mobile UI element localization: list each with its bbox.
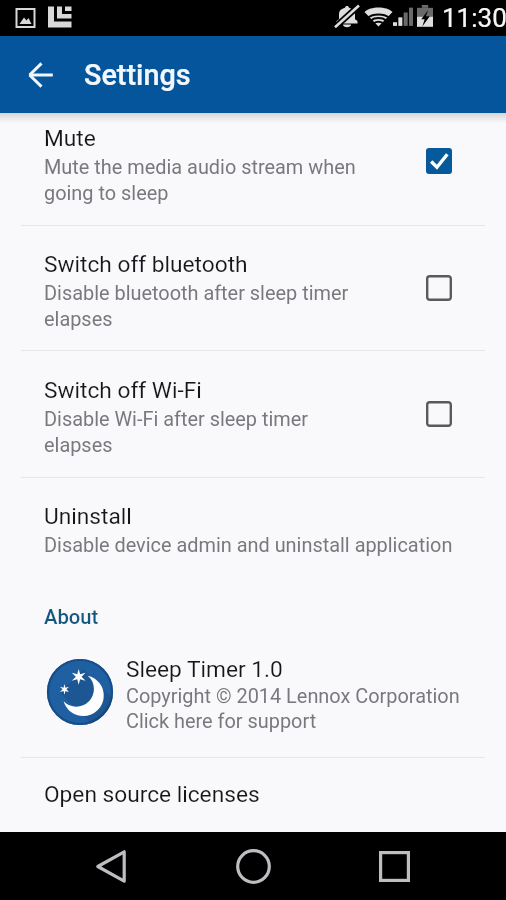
staticText: Copyright © 2014 Lennox Corporation: [126, 685, 460, 708]
button[interactable]: Home: [205, 832, 301, 900]
staticText: Switch off bluetooth: [44, 251, 248, 278]
button[interactable]: Uninstall: [0, 478, 506, 553]
staticText: Uninstall: [44, 503, 132, 530]
staticText: 11:30: [442, 3, 506, 33]
staticText: Mute the media audio stream when going t…: [44, 156, 356, 205]
button[interactable]: Navigate up: [0, 36, 78, 113]
button[interactable]: Back: [63, 832, 159, 900]
button[interactable]: Mute, checked: [414, 136, 464, 186]
staticText: Mute: [44, 125, 96, 152]
staticText: Disable device admin and uninstall appli…: [44, 534, 453, 557]
staticText: Click here for support: [126, 710, 317, 733]
button[interactable]: Switch off bluetooth, unchecked: [414, 263, 464, 313]
staticText: Open source licenses: [44, 781, 260, 808]
button[interactable]: Sleep Timer 1.0: [0, 645, 506, 745]
button[interactable]: Open source licenses: [0, 758, 506, 832]
button[interactable]: Switch off Wi-Fi: [0, 351, 506, 477]
staticText: Settings: [84, 58, 191, 92]
staticText: Disable bluetooth after sleep timer elap…: [44, 282, 349, 331]
staticText: Sleep Timer 1.0: [126, 656, 283, 683]
button[interactable]: Mute: [0, 113, 506, 225]
staticText: About: [44, 605, 99, 629]
staticText: Disable Wi-Fi after sleep timer elapses: [44, 408, 309, 457]
button[interactable]: Switch off Wi-Fi, unchecked: [414, 389, 464, 439]
button[interactable]: Switch off bluetooth: [0, 226, 506, 350]
staticText: Switch off Wi-Fi: [44, 377, 202, 404]
button[interactable]: Recent apps: [346, 832, 442, 900]
